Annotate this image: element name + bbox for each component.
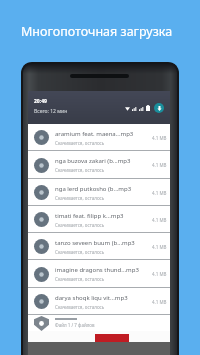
staticText: 20:49 — [34, 98, 47, 105]
staticText: 4.1 MB — [152, 299, 167, 305]
staticText: Многопоточная загрузка — [21, 23, 173, 40]
staticText: nga buzova zakari (b...mp3 — [55, 157, 131, 165]
button[interactable]: Файл 1 / 7 файлов — [28, 315, 170, 331]
staticText: 4.1 MB — [152, 271, 167, 277]
staticText: Скачивается, осталось — [55, 140, 105, 146]
staticText: timati feat. filipp k...mp3 — [55, 212, 124, 220]
button[interactable]: nga buzova zakari (b...mp3 — [28, 151, 170, 179]
button[interactable]: imagine dragons thund...mp3 — [28, 260, 170, 288]
staticText: Скачивается, осталось — [55, 167, 105, 173]
button[interactable]: nga lerd putkosho (b...mp3 — [28, 179, 170, 206]
staticText: 4.1 MB — [152, 135, 167, 141]
staticText: imagine dragons thund...mp3 — [55, 266, 139, 274]
staticText: Файл 1 / 7 файлов — [55, 322, 95, 328]
staticText: 4.1 MB — [152, 190, 167, 196]
staticText: tanzo seveen buum (b...mp3 — [55, 239, 135, 247]
staticText: aramium feat. maena...mp3 — [55, 130, 134, 138]
button[interactable]: darya shoqk liqu vit...mp3 — [28, 288, 170, 315]
staticText: 4.1 MB — [152, 244, 167, 250]
staticText: darya shoqk liqu vit...mp3 — [55, 294, 128, 302]
staticText: 4.1 MB — [152, 217, 167, 223]
staticText: Скачивается, осталось — [55, 249, 105, 255]
button[interactable]: timati feat. filipp k...mp3 — [28, 206, 170, 233]
staticText: Скачивается, осталось — [55, 195, 105, 201]
staticText: Скачивается, осталось — [55, 222, 105, 228]
staticText: Всего: 12 мин — [34, 108, 68, 115]
staticText: 4.1 MB — [152, 162, 167, 168]
staticText: Скачивается, осталось — [55, 276, 105, 282]
button[interactable]: aramium feat. maena...mp3 — [28, 124, 170, 151]
staticText: Скачивается, осталось — [55, 304, 105, 310]
staticText: nga lerd putkosho (b...mp3 — [55, 185, 132, 193]
button[interactable]: Downloads — [154, 103, 164, 113]
button[interactable]: tanzo seveen buum (b...mp3 — [28, 233, 170, 260]
